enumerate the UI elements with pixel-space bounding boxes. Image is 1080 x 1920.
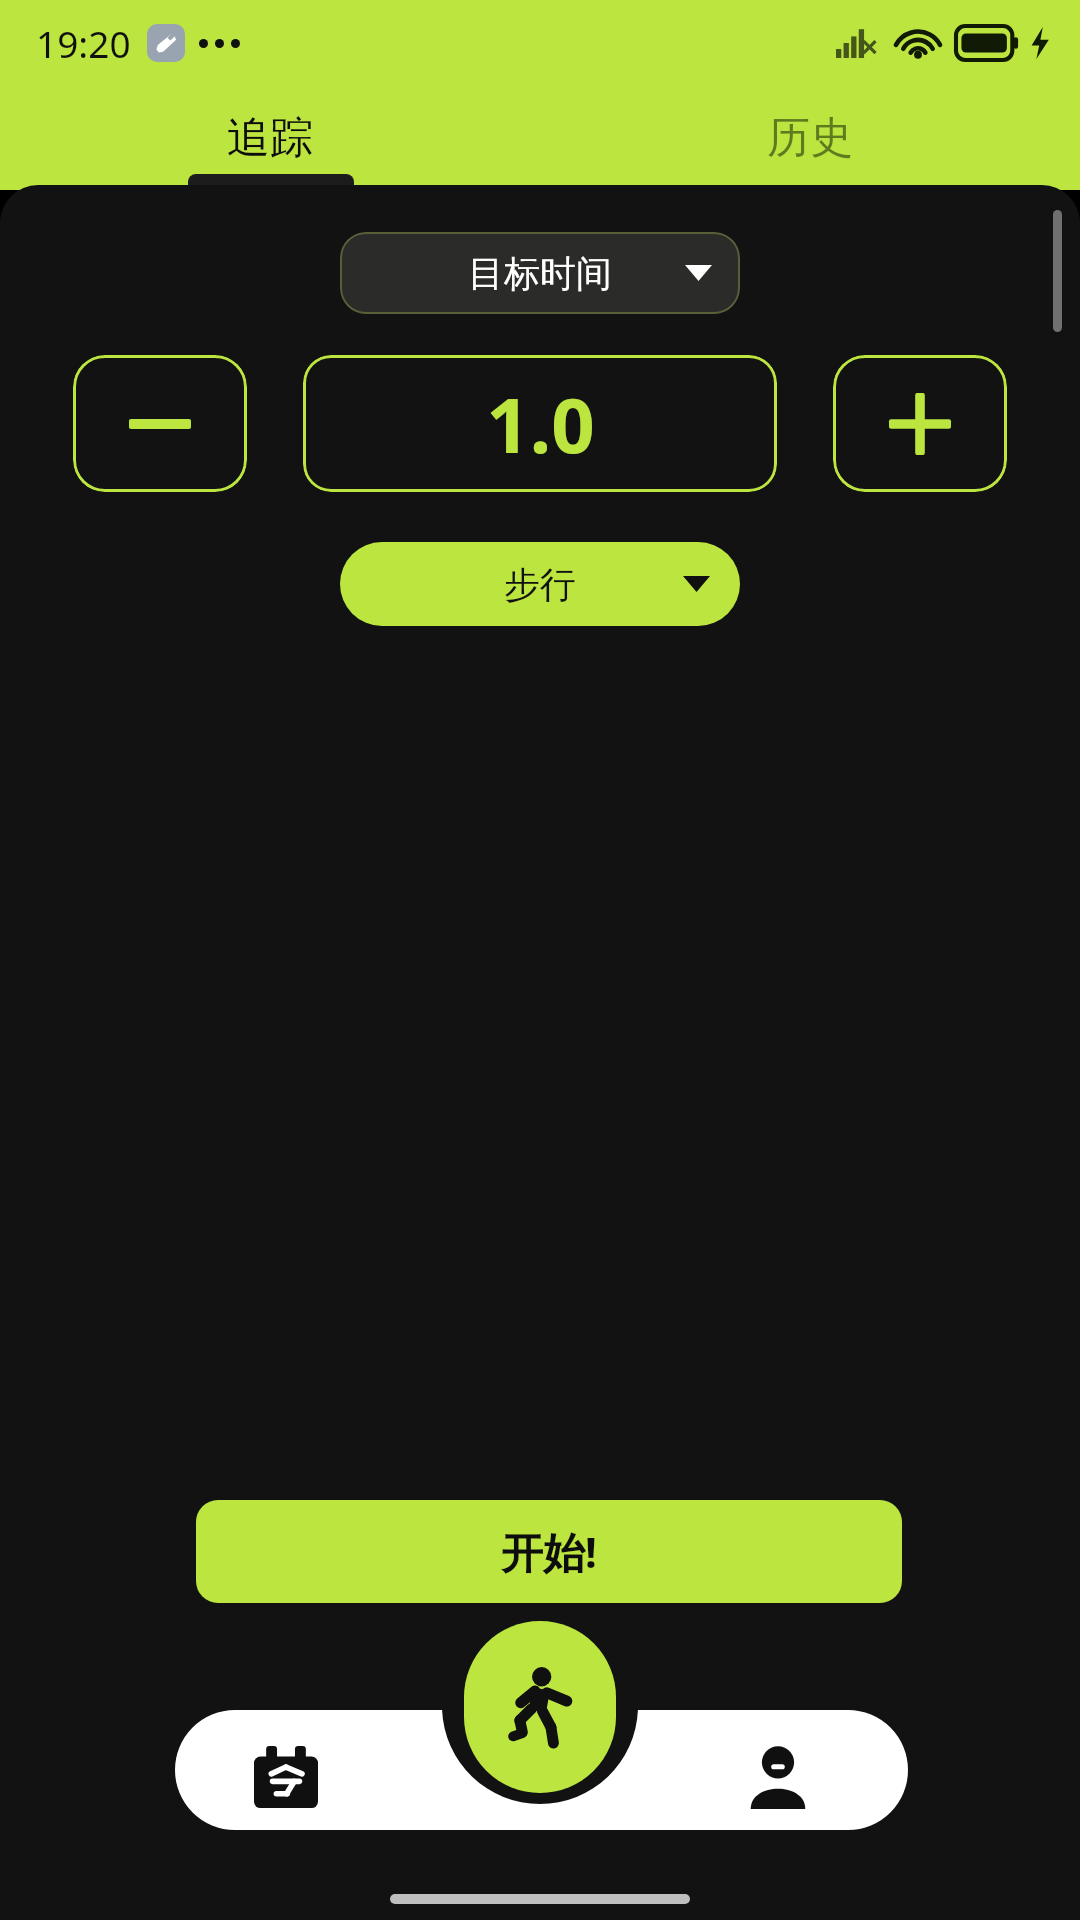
button[interactable]: 目标时间 [340, 232, 740, 314]
staticText: 目标时间 [468, 251, 612, 296]
button[interactable]: 1.0 [303, 355, 777, 492]
button[interactable]: 历史 [540, 95, 1080, 190]
button[interactable]: 追踪 [0, 95, 540, 190]
staticText: 1.0 [486, 372, 595, 476]
staticText: 开始! [501, 1523, 597, 1580]
button[interactable]: Today [230, 1731, 342, 1823]
staticText: 19:20 [36, 18, 131, 68]
staticText: 历史 [767, 111, 853, 165]
button[interactable]: Start workout [464, 1621, 616, 1793]
button[interactable]: Decrease [73, 355, 247, 492]
button[interactable]: 开始! [196, 1500, 902, 1603]
button[interactable]: 步行 [340, 542, 740, 626]
button[interactable] [0, 1625, 1080, 1845]
button[interactable]: Profile [722, 1731, 834, 1823]
button[interactable]: Increase [833, 355, 1007, 492]
staticText: 追踪 [227, 111, 313, 165]
staticText: 步行 [504, 562, 576, 607]
